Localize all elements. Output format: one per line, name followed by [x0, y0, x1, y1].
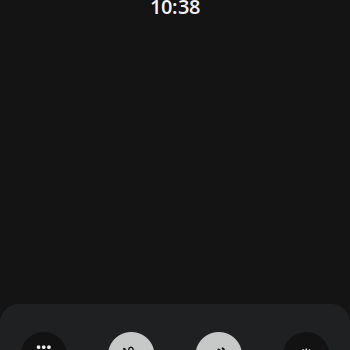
button[interactable]: Mute — [87, 332, 175, 350]
button[interactable]: Effects — [262, 332, 350, 350]
button[interactable]: More — [0, 332, 87, 350]
button[interactable]: Speaker — [175, 332, 262, 350]
staticText: 10:38 — [150, 0, 200, 20]
